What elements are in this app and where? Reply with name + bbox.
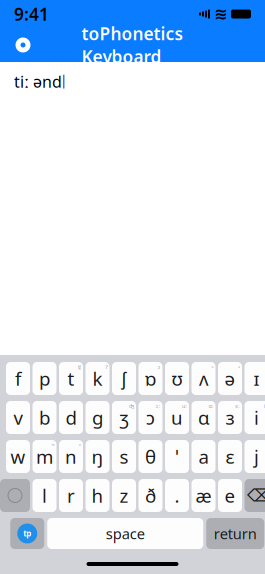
button[interactable]: space [47,518,203,549]
staticText: space [106,524,145,543]
staticText: t [67,366,74,391]
button[interactable] [112,440,136,473]
staticText: v [13,405,22,430]
staticText: ᵃ [211,363,213,371]
button[interactable] [32,401,56,434]
button[interactable] [85,401,109,434]
button[interactable]: ʤ [112,401,136,434]
button[interactable]: ᵃ [191,362,215,395]
button[interactable] [165,479,189,512]
staticText: ð [145,483,156,508]
staticText: . [174,483,179,508]
button[interactable]: uː [165,401,189,434]
staticText: ʌ [199,366,208,391]
button[interactable] [165,440,189,473]
staticText: l [42,483,47,508]
staticText: ˈ [175,444,178,469]
staticText: b [39,405,50,430]
staticText: s [119,444,128,469]
button[interactable]: ɑː [191,401,215,434]
staticText: ≋ [214,5,227,23]
staticText: ᵐ [51,441,54,449]
staticText: ɑ [198,405,209,430]
staticText: toPhonetics Keyboard [81,22,183,68]
button[interactable] [138,440,162,473]
button[interactable] [218,479,242,512]
staticText: æ [195,483,211,508]
staticText: ŋ [91,444,103,469]
staticText: ⌫ [247,486,265,505]
staticText: p [39,366,50,391]
button[interactable] [218,440,242,473]
staticText: z [119,483,128,508]
button[interactable] [32,362,56,395]
button[interactable]: ⁿ [59,440,83,473]
staticText: j [254,444,259,469]
staticText: ɑː [208,402,213,410]
staticText: a [198,444,208,469]
staticText: e [224,483,235,508]
button[interactable] [32,479,56,512]
staticText: g [92,405,103,430]
button[interactable]: Settings [10,32,36,58]
staticText: ɒ [145,366,156,391]
staticText: ɪ [253,366,259,391]
staticText: ʧ [78,363,81,371]
button[interactable] [59,479,83,512]
staticText: ʤ [129,402,134,410]
button[interactable]: ʧ [59,362,83,395]
button[interactable] [112,479,136,512]
staticText: iː [263,402,265,410]
button[interactable]: return [206,518,264,549]
button[interactable] [112,362,136,395]
staticText: k [92,366,102,391]
staticText: h [91,483,103,508]
staticText: ɛ [225,444,234,469]
button[interactable]: ᵐ [32,440,56,473]
staticText: u [171,405,183,430]
staticText: n [65,444,77,469]
button[interactable]: ᵃ [218,362,242,395]
staticText: ʔ [105,363,107,371]
staticText: d [65,405,76,430]
staticText: ɔ [146,405,155,430]
button[interactable] [6,362,30,395]
button[interactable]: Delete [244,479,265,512]
staticText: ᵃ [238,363,240,371]
staticText: tp [23,528,31,539]
button[interactable]: ᶦ [244,362,265,395]
staticText: 9:41 [14,2,49,25]
button[interactable] [6,440,30,473]
staticText: ɜː [235,402,240,410]
staticText: ʃ [121,366,126,391]
button[interactable]: ʔ [85,362,109,395]
button[interactable]: iː [244,401,265,434]
button[interactable]: ɔ [138,362,162,395]
staticText: r [67,483,75,508]
button[interactable] [165,362,189,395]
button[interactable] [191,440,215,473]
button[interactable]: ɜː [218,401,242,434]
button[interactable] [244,440,265,473]
staticText: ʒ [119,405,128,430]
staticText: ʊ [171,366,182,391]
staticText: ə [224,366,235,391]
button[interactable]: Next keyboard [10,518,44,549]
staticText: ɜ [225,405,234,430]
button[interactable] [85,479,109,512]
staticText: m [36,444,53,469]
staticText: f [15,366,21,391]
staticText: w [10,444,25,469]
button[interactable] [138,479,162,512]
staticText: return [214,524,257,543]
button[interactable] [191,479,215,512]
button[interactable]: Shift [0,479,30,512]
staticText: tiː ənd [14,71,62,92]
button[interactable] [59,401,83,434]
button[interactable] [6,401,30,434]
staticText: i [254,405,259,430]
button[interactable]: ɔː [138,401,162,434]
staticText: ɔ [157,363,160,371]
staticText: θ [145,444,156,469]
button[interactable] [85,440,109,473]
